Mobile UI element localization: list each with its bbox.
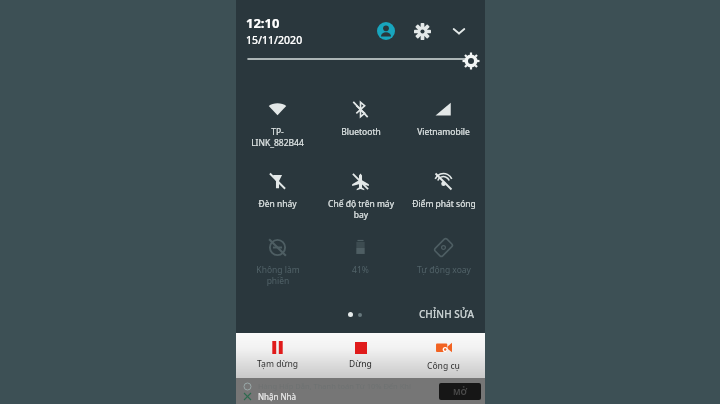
button[interactable]: TP- LINK_882B44 bbox=[236, 98, 319, 150]
staticText: MỞ bbox=[453, 386, 468, 397]
button[interactable]: Bluetooth bbox=[319, 98, 402, 140]
staticText: 15/11/2020 bbox=[246, 33, 303, 47]
button[interactable]: Settings bbox=[407, 16, 437, 46]
button[interactable]: Điểm phát sóng bbox=[402, 170, 485, 212]
button[interactable]: Vietnamobile bbox=[402, 98, 485, 140]
staticText: Tự động xoay bbox=[417, 264, 471, 276]
button[interactable]: Dừng bbox=[319, 333, 402, 378]
staticText: 41% bbox=[352, 264, 369, 276]
staticText: Vietnamobile bbox=[417, 126, 470, 138]
staticText: Điểm phát sóng bbox=[412, 198, 476, 210]
button[interactable]: Brightness bbox=[248, 50, 473, 68]
button[interactable]: Đèn nháy bbox=[236, 170, 319, 212]
button[interactable]: Công cụ bbox=[402, 333, 485, 378]
staticText: Bluetooth bbox=[341, 126, 381, 138]
staticText: Dừng bbox=[349, 358, 372, 370]
button[interactable]: Chế độ trên máy bay bbox=[319, 170, 402, 222]
staticText: Nhận Nhà bbox=[258, 391, 297, 402]
button[interactable]: CHỈNH SỬA bbox=[409, 303, 485, 325]
staticText: TP- LINK_882B44 bbox=[251, 126, 304, 148]
staticText: Chế độ trên máy bay bbox=[328, 198, 394, 220]
staticText: Đèn nháy bbox=[258, 198, 297, 210]
staticText: CHỈNH SỬA bbox=[419, 307, 475, 321]
button[interactable]: 41% bbox=[319, 236, 402, 278]
button[interactable]: Collapse bbox=[445, 17, 473, 45]
button[interactable]: Không làm phiền bbox=[236, 236, 319, 288]
button[interactable]: Tạm dừng bbox=[236, 333, 319, 378]
staticText: Tạm dừng bbox=[257, 358, 299, 370]
button[interactable]: Account bbox=[371, 16, 401, 46]
button[interactable]: MỞ bbox=[439, 383, 481, 400]
button[interactable]: Tự động xoay bbox=[402, 236, 485, 278]
staticText: Công cụ bbox=[427, 360, 460, 372]
staticText: 12:10 bbox=[246, 14, 280, 32]
staticText: Không làm phiền bbox=[256, 264, 300, 286]
